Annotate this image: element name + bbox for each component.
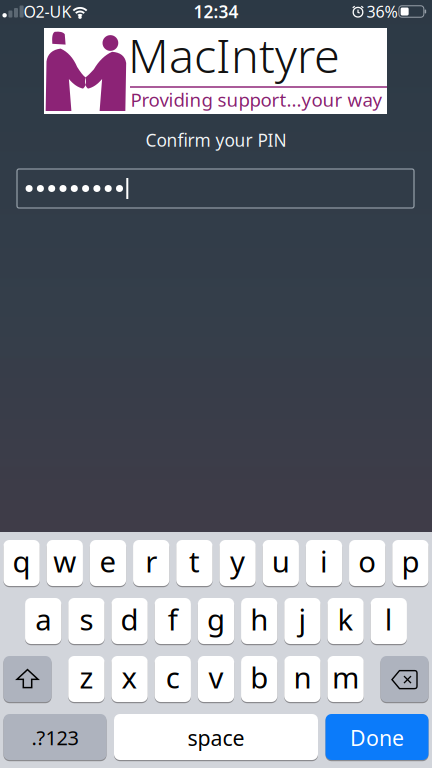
staticText: v: [208, 658, 223, 697]
button[interactable]: h: [241, 598, 277, 645]
button[interactable]: k: [327, 598, 364, 645]
button[interactable]: n: [284, 656, 320, 703]
button[interactable]: y: [219, 540, 256, 587]
button[interactable]: t: [176, 540, 212, 587]
staticText: 36%: [366, 1, 397, 22]
staticText: a: [35, 600, 51, 639]
button[interactable]: m: [327, 656, 364, 703]
staticText: i: [320, 542, 328, 581]
button[interactable]: Shift: [3, 656, 51, 703]
staticText: b: [250, 658, 268, 697]
button[interactable]: f: [155, 598, 191, 645]
button[interactable]: c: [155, 656, 191, 703]
button[interactable]: b: [241, 656, 277, 703]
staticText: f: [168, 600, 178, 639]
button[interactable]: a: [25, 598, 61, 645]
button[interactable]: o: [349, 540, 385, 587]
button[interactable]: g: [198, 598, 234, 645]
staticText: p: [401, 542, 419, 581]
staticText: y: [230, 542, 245, 581]
staticText: d: [121, 600, 139, 639]
staticText: g: [207, 600, 225, 639]
staticText: e: [99, 542, 116, 581]
button[interactable]: r: [133, 540, 169, 587]
staticText: .?123: [31, 724, 78, 751]
staticText: h: [250, 600, 268, 639]
button[interactable]: space: [114, 714, 318, 761]
staticText: m: [332, 658, 359, 697]
button[interactable]: x: [111, 656, 148, 703]
staticText: r: [145, 542, 157, 581]
staticText: s: [79, 600, 93, 639]
button[interactable]: l: [371, 598, 407, 645]
staticText: O2-UK: [23, 1, 71, 22]
staticText: w: [53, 542, 76, 581]
button[interactable]: s: [68, 598, 104, 645]
staticText: c: [166, 658, 180, 697]
staticText: t: [189, 542, 200, 581]
button[interactable]: .?123: [3, 714, 106, 761]
button[interactable]: i: [306, 540, 342, 587]
staticText: k: [338, 600, 354, 639]
staticText: n: [293, 658, 311, 697]
button[interactable]: d: [111, 598, 148, 645]
button[interactable]: w: [47, 540, 83, 587]
staticText: j: [298, 600, 306, 639]
button[interactable]: j: [284, 598, 320, 645]
staticText: q: [13, 542, 31, 581]
button[interactable]: Done: [325, 714, 428, 761]
button[interactable]: u: [263, 540, 299, 587]
staticText: MacIntyre: [128, 24, 340, 86]
staticText: x: [122, 658, 138, 697]
staticText: Providing support...your way: [130, 87, 382, 112]
button[interactable]: e: [90, 540, 126, 587]
staticText: Confirm your PIN: [145, 128, 286, 151]
staticText: 12:34: [193, 0, 238, 23]
staticText: o: [358, 542, 376, 581]
staticText: z: [79, 658, 93, 697]
button[interactable]: Delete: [380, 656, 428, 703]
button[interactable]: v: [198, 656, 234, 703]
button[interactable]: q: [3, 540, 40, 587]
button[interactable]: z: [68, 656, 104, 703]
staticText: u: [272, 542, 290, 581]
staticText: l: [385, 600, 393, 639]
staticText: space: [187, 723, 244, 752]
staticText: Done: [350, 723, 404, 752]
button[interactable]: p: [392, 540, 428, 587]
button[interactable]: PIN entry field: [17, 169, 414, 208]
